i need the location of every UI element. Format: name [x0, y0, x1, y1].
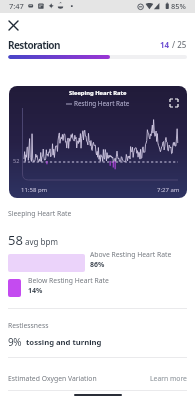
staticText: tossing and turning — [26, 337, 102, 347]
staticText: 52 — [13, 157, 20, 164]
staticText: avg bpm — [25, 236, 58, 247]
staticText: 7:47 — [9, 1, 24, 11]
button[interactable]: Close — [4, 16, 22, 34]
staticText: 14 — [160, 39, 170, 50]
staticText: 58 — [8, 231, 23, 249]
staticText: Above Resting Heart Rate — [90, 250, 172, 259]
staticText: 14% — [28, 286, 43, 296]
staticText: Sleeping Heart Rate — [69, 89, 127, 97]
staticText: Below Resting Heart Rate — [28, 276, 109, 285]
staticText: Restlessness — [8, 321, 49, 330]
staticText: Estimated Oxygen Variation — [8, 374, 97, 383]
staticText: 85% — [171, 1, 186, 11]
staticText: Learn more — [150, 374, 187, 383]
staticText: 7:27 am — [157, 186, 180, 194]
staticText: 11:58 pm — [21, 186, 48, 194]
staticText: 9% — [8, 335, 22, 349]
staticText: Sleeping Heart Rate — [8, 209, 72, 218]
button[interactable]: Estimated Oxygen Variation — [0, 370, 195, 386]
staticText: Restoration — [8, 38, 60, 51]
staticText: / 25 — [170, 39, 187, 50]
staticText: 86% — [90, 260, 105, 270]
staticText: Resting Heart Rate — [74, 99, 130, 108]
button[interactable]: Expand chart — [166, 95, 182, 111]
